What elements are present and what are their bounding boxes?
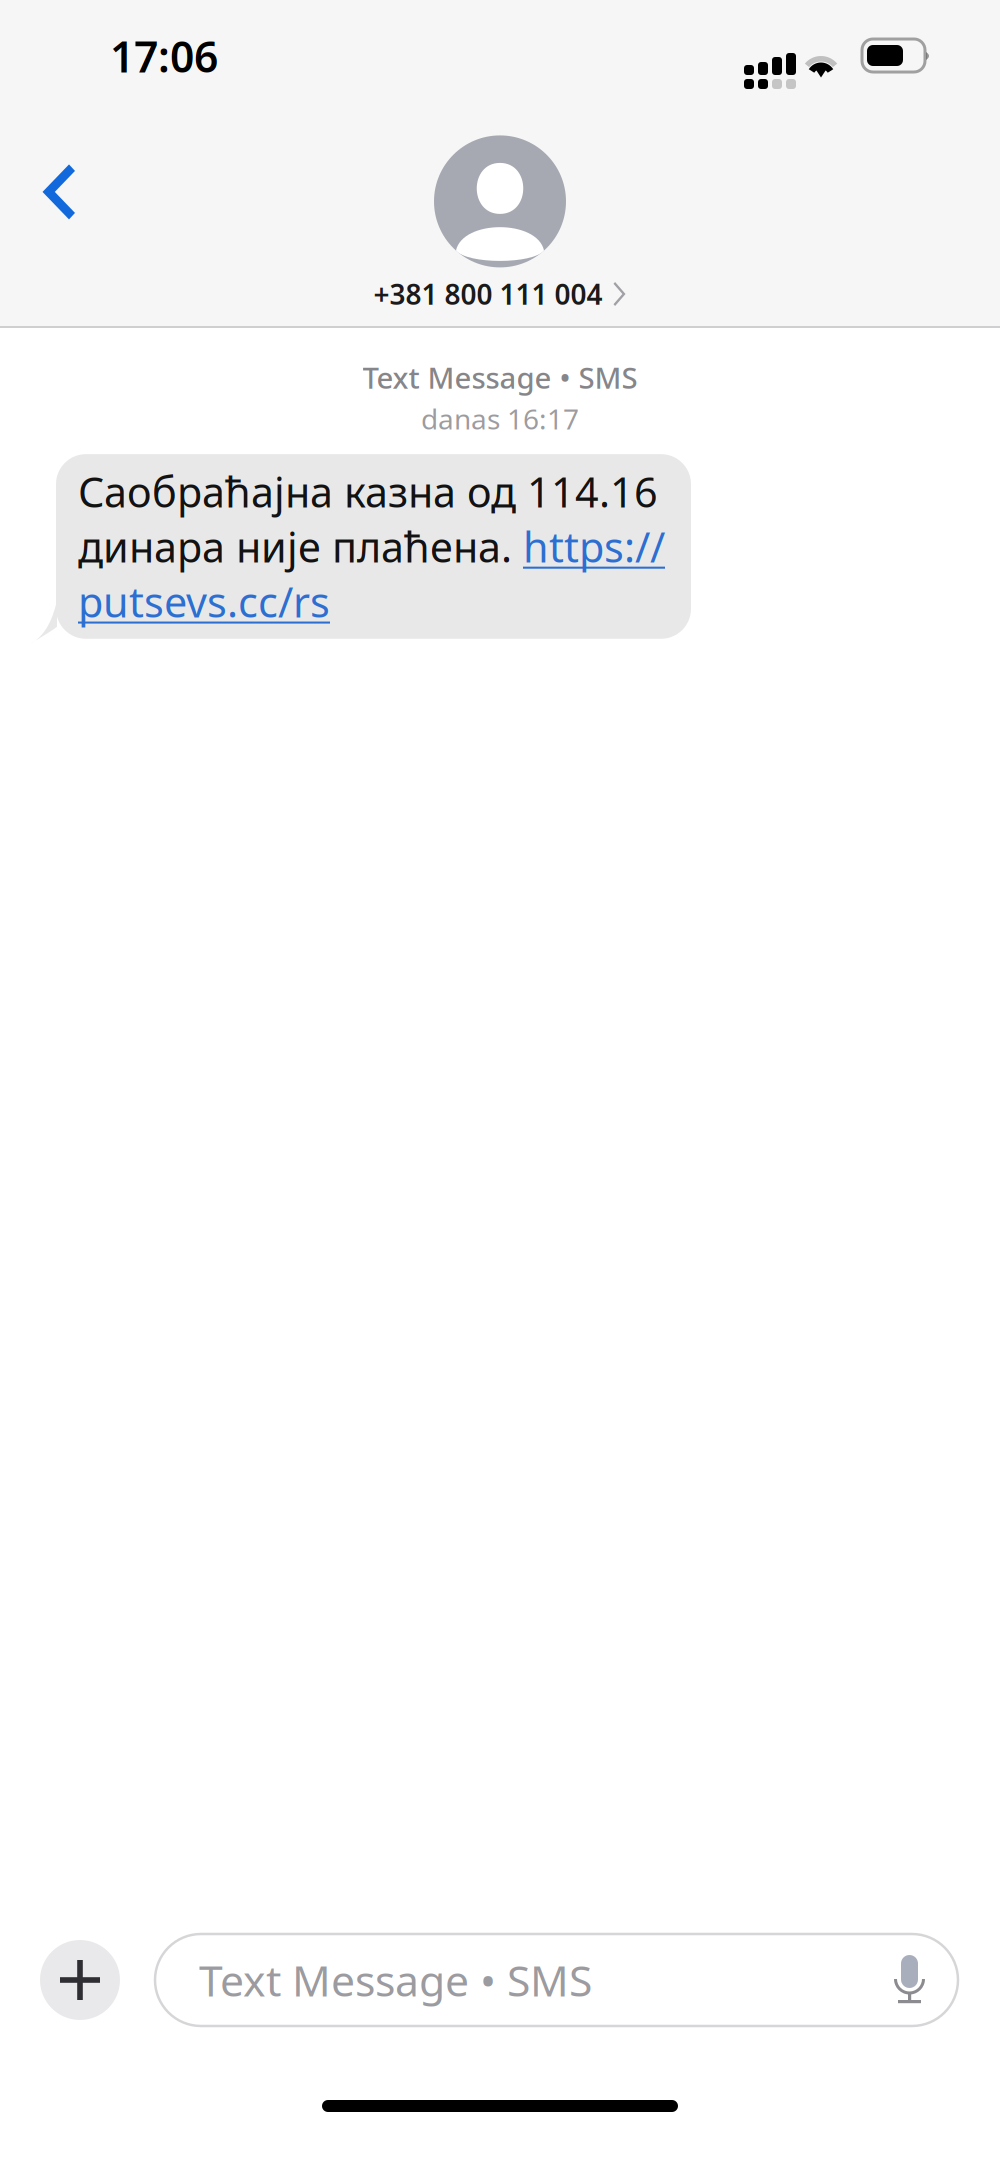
staticText: Text Message • SMS [362, 358, 637, 397]
button[interactable]: Back [0, 125, 78, 219]
button[interactable]: +381 800 111 004 [373, 275, 626, 313]
staticText: Саобраћајна казна од 114.16 динара није … [78, 464, 665, 629]
button[interactable]: Add attachment [40, 1940, 120, 2020]
staticText: Text Message • SMS [199, 1952, 592, 2008]
staticText: 17:06 [110, 28, 218, 84]
staticText: +381 800 111 004 [373, 275, 602, 313]
button[interactable]: Text Message • SMS [155, 1934, 958, 2026]
staticText: danas 16:17 [421, 400, 579, 437]
